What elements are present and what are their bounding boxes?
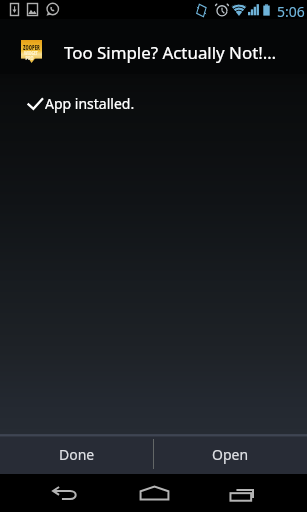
button[interactable]: Done <box>0 434 153 474</box>
staticText: Open <box>212 445 249 464</box>
staticText: App installed. <box>45 94 135 113</box>
button[interactable]: Back <box>20 474 98 512</box>
staticText: 5:06 <box>277 2 305 21</box>
staticText: Too Simple? Actually Not!… <box>64 41 277 64</box>
button[interactable]: Recent apps <box>205 474 283 512</box>
button[interactable]: Home <box>115 474 193 512</box>
staticText: Done <box>59 445 95 464</box>
button[interactable]: Open <box>153 434 307 474</box>
